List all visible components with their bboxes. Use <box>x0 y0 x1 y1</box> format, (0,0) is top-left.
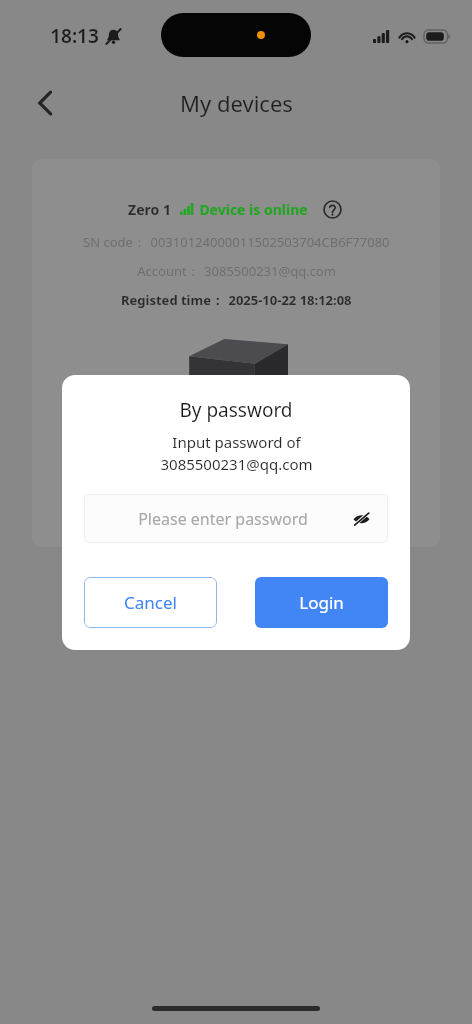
staticText: 18:13 <box>50 23 99 49</box>
staticText: Cancel <box>124 591 177 614</box>
staticText: By password <box>179 397 293 423</box>
staticText: 3085500231@qq.com <box>204 262 336 280</box>
staticText: Zero 1 <box>128 200 171 219</box>
button[interactable]: Login <box>255 577 388 628</box>
staticText: Registed time： <box>121 291 224 309</box>
button[interactable]: Back <box>24 82 66 124</box>
staticText: Input password of <box>172 432 301 452</box>
button[interactable]: Please enter password <box>84 494 388 543</box>
staticText: Device is online <box>199 200 308 219</box>
staticText: My devices <box>180 88 293 118</box>
button[interactable]: Help <box>320 197 344 221</box>
staticText: 2025-10-22 18:12:08 <box>228 291 352 309</box>
button[interactable]: Show password <box>348 506 374 532</box>
button[interactable]: Zero 1 <box>32 159 440 547</box>
staticText: Login <box>299 591 344 614</box>
staticText: 3085500231@qq.com <box>160 454 313 474</box>
staticText: Account： <box>137 262 200 280</box>
staticText: Please enter password <box>98 508 348 530</box>
staticText: 00310124000011502503704CB6F77080 <box>150 233 390 251</box>
staticText: SN code： <box>83 233 146 251</box>
button[interactable]: Cancel <box>84 577 217 628</box>
